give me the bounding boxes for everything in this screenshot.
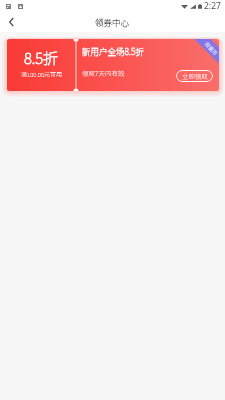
staticText: 8.5折 [24, 47, 59, 69]
button[interactable]: 立即领取 [176, 70, 213, 82]
staticText: 领券中心 [95, 16, 130, 28]
button[interactable]: 8.5折 [7, 39, 219, 91]
button[interactable]: Back [0, 12, 22, 32]
staticText: 领取7天内有效 [82, 68, 125, 77]
staticText: 2:27 [204, 0, 221, 12]
staticText: 限量抢 [204, 40, 219, 57]
staticText: 立即领取 [182, 72, 208, 81]
staticText: 满100.00元可用 [21, 70, 63, 79]
staticText: 新用户全场8.5折 [82, 45, 144, 57]
